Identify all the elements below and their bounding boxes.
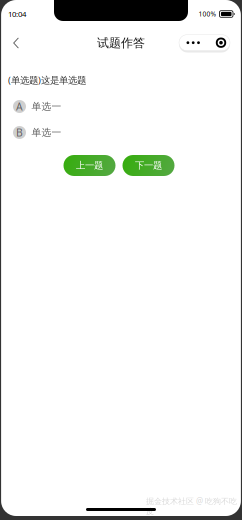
staticText: 下一题	[135, 160, 162, 171]
staticText: 10:04	[8, 9, 26, 19]
staticText: A	[16, 99, 23, 114]
staticText: 100%	[198, 9, 216, 19]
button[interactable]: B	[0, 123, 242, 142]
staticText: B	[16, 125, 23, 140]
staticText: 单选一	[31, 100, 61, 113]
button[interactable]: Back	[6, 32, 26, 54]
staticText: 单选一	[31, 126, 61, 139]
button[interactable]: 下一题	[122, 155, 174, 176]
staticText: 掘金技术社区 @ 吃狗不吃皮	[146, 495, 237, 516]
button[interactable]: 上一题	[63, 155, 115, 176]
button[interactable]: A	[0, 97, 242, 116]
staticText: 上一题	[76, 160, 103, 171]
staticText: (单选题)这是单选题	[8, 74, 86, 86]
staticText: 试题作答	[97, 35, 145, 50]
